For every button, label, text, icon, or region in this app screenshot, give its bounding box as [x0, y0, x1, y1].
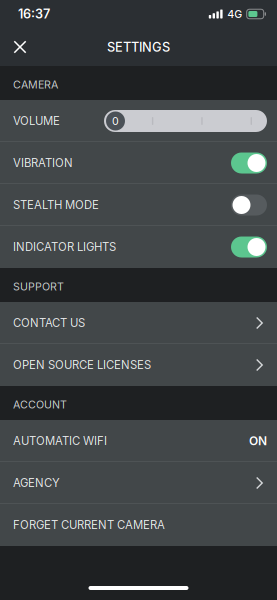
staticText: FORGET CURRENT CAMERA — [13, 518, 165, 532]
staticText: CAMERA — [13, 78, 58, 91]
button[interactable]: OPEN SOURCE LICENSES — [0, 344, 277, 386]
staticText: AGENCY — [13, 476, 60, 490]
staticText: AUTOMATIC WIFI — [13, 434, 107, 448]
staticText: ON — [249, 434, 267, 448]
button[interactable]: VIBRATION — [0, 142, 277, 184]
button[interactable]: VOLUME — [0, 100, 277, 142]
staticText: VOLUME — [13, 114, 60, 128]
button[interactable]: AGENCY — [0, 462, 277, 504]
button[interactable]: INDICATOR LIGHTS — [0, 226, 277, 268]
staticText: 16:37 — [18, 6, 50, 22]
button[interactable]: FORGET CURRENT CAMERA — [0, 504, 277, 546]
staticText: INDICATOR LIGHTS — [13, 240, 116, 254]
button[interactable]: STEALTH MODE — [0, 184, 277, 226]
staticText: ACCOUNT — [13, 398, 67, 411]
staticText: STEALTH MODE — [13, 198, 99, 212]
staticText: SUPPORT — [13, 280, 64, 293]
button[interactable]: Close — [0, 28, 40, 66]
button[interactable]: CONTACT US — [0, 302, 277, 344]
staticText: SETTINGS — [107, 39, 170, 55]
button[interactable]: AUTOMATIC WIFI — [0, 420, 277, 462]
staticText: 0 — [112, 114, 119, 127]
staticText: OPEN SOURCE LICENSES — [13, 358, 151, 372]
staticText: VIBRATION — [13, 156, 73, 170]
staticText: CONTACT US — [13, 316, 85, 330]
staticText: 4G — [227, 7, 242, 20]
